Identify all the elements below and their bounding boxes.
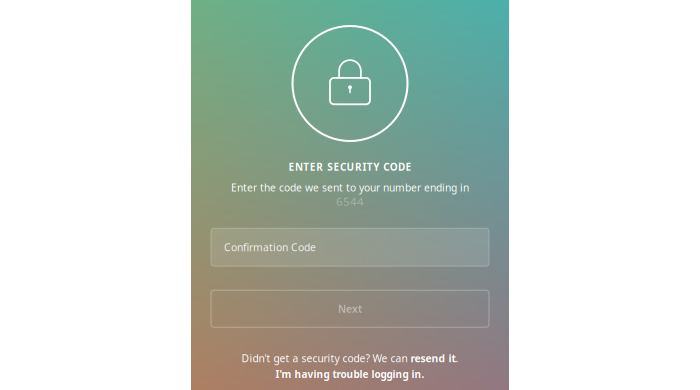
staticText: ENTER SECURITY CODE: [288, 160, 411, 174]
staticText: I'm having trouble logging in.: [275, 367, 424, 381]
staticText: Didn't get a security code? We can: [241, 351, 410, 365]
staticText: Enter the code we sent to your number en…: [231, 181, 469, 195]
button[interactable]: Next: [211, 290, 489, 327]
button[interactable]: I'm having trouble logging in.: [275, 367, 424, 381]
button[interactable]: Didn't get a security code? We can: [241, 351, 458, 365]
button[interactable]: Confirmation Code: [211, 228, 489, 266]
staticText: 6544: [336, 194, 364, 209]
staticText: resend it: [410, 351, 455, 365]
staticText: Next: [338, 302, 362, 316]
staticText: Confirmation Code: [224, 240, 316, 254]
staticText: .: [455, 351, 458, 365]
